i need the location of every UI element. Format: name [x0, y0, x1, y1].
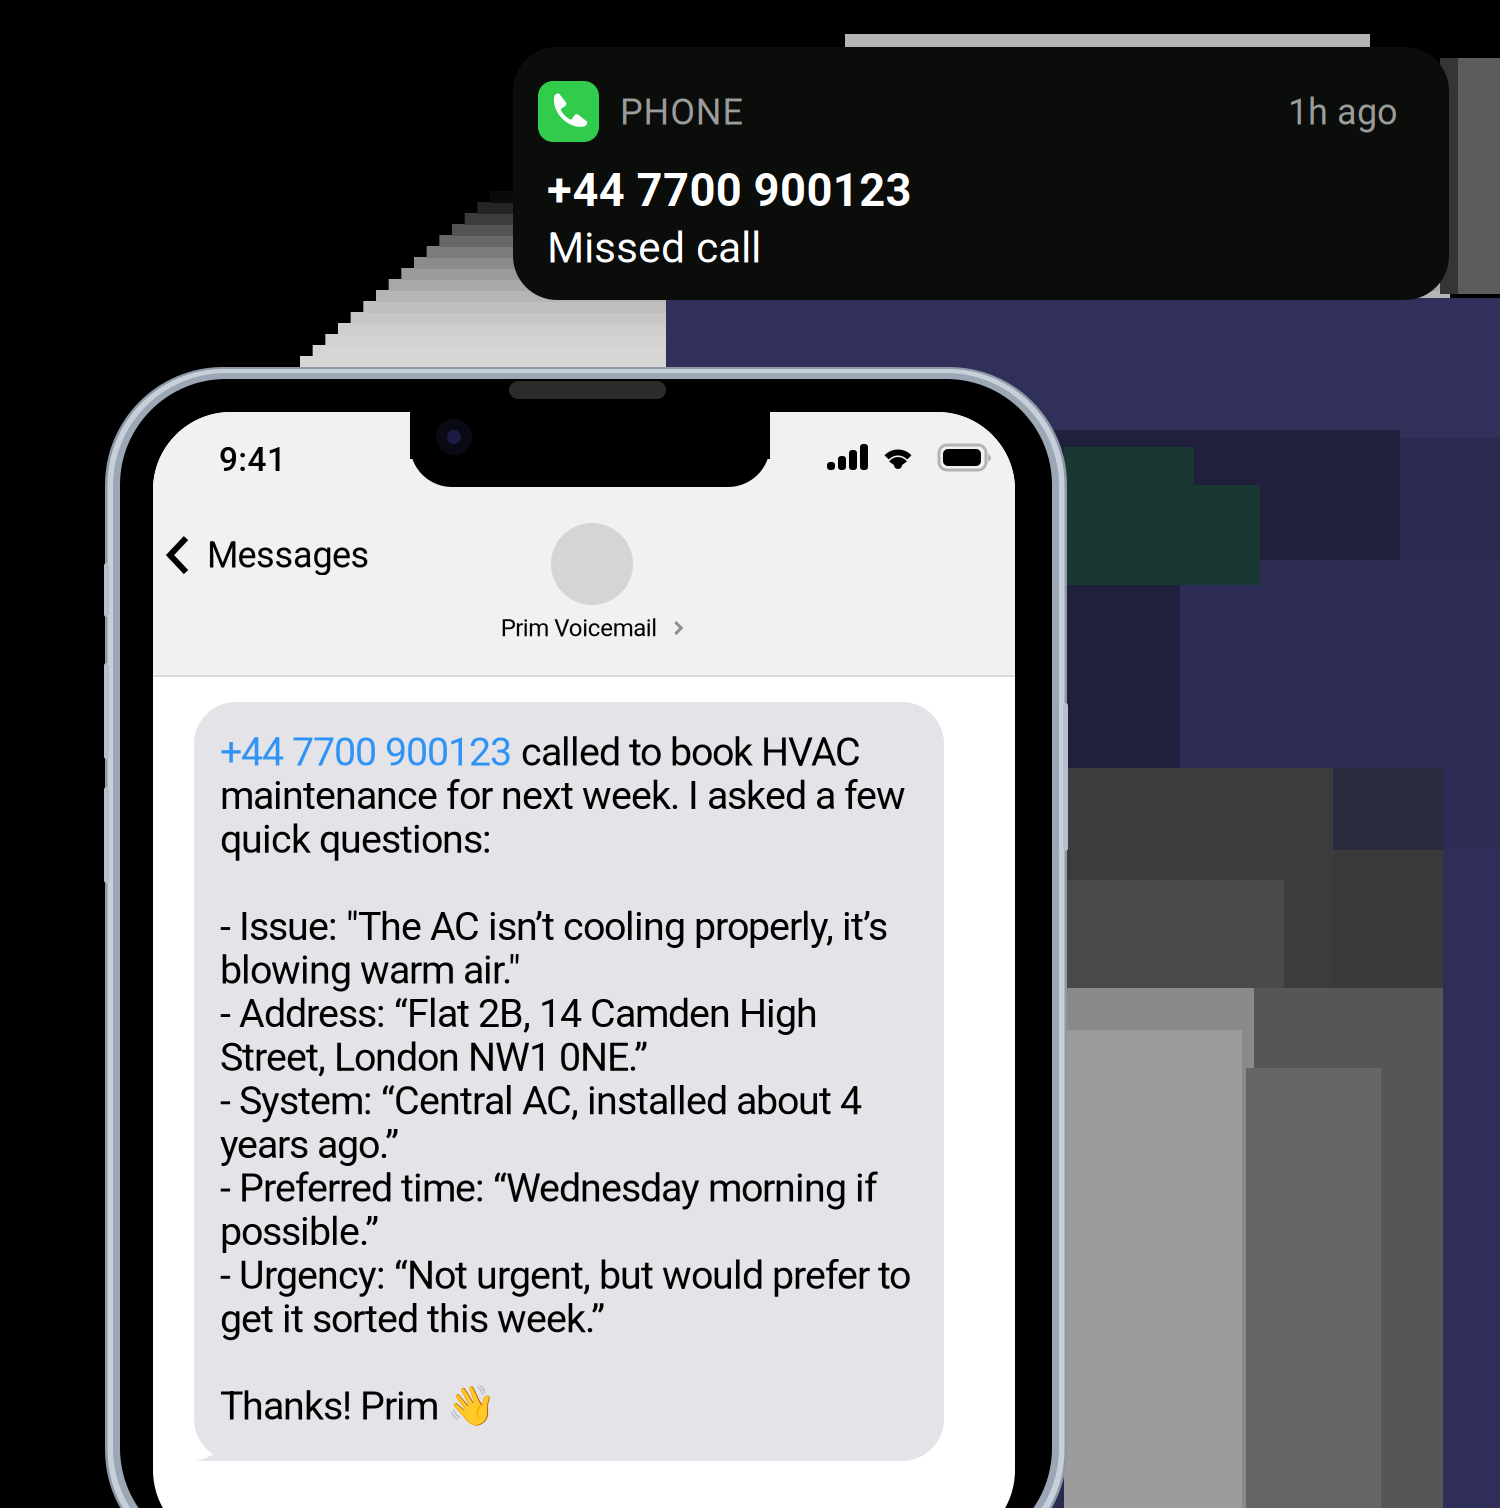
staticText: - Preferred time: “Wednesday morning if [220, 1165, 878, 1211]
staticText: possible.” [220, 1209, 379, 1255]
staticText: Thanks! Prim 👋 [220, 1383, 496, 1429]
staticText: years ago.” [220, 1121, 399, 1167]
button[interactable]: Messages [153, 522, 385, 588]
staticText: quick questions: [220, 816, 492, 862]
staticText: 1h ago [1288, 91, 1398, 133]
staticText: +44 7700 900123 [220, 729, 512, 775]
staticText: PHONE [620, 91, 742, 133]
staticText: +44 7700 900123 [547, 164, 912, 217]
staticText: - Urgency: “Not urgent, but would prefer… [220, 1252, 911, 1298]
staticText: - System: “Central AC, installed about 4 [220, 1078, 862, 1124]
staticText: called to book HVAC [512, 729, 861, 775]
button[interactable]: Prim Voicemail [489, 519, 695, 646]
staticText: - Address: “Flat 2B, 14 Camden High [220, 991, 818, 1037]
staticText: Missed call [547, 223, 761, 273]
staticText: Messages [207, 534, 369, 576]
staticText: blowing warm air." [220, 947, 521, 993]
staticText: maintenance for next week. I asked a few [220, 773, 906, 819]
staticText: Street, London NW1 0NE.” [220, 1034, 648, 1080]
staticText: - Issue: "The AC isn’t cooling properly,… [220, 903, 888, 949]
button[interactable]: PHONE [513, 47, 1449, 300]
staticText: Prim Voicemail [501, 614, 657, 642]
staticText: get it sorted this week.” [220, 1296, 605, 1342]
staticText: 9:41 [219, 440, 286, 479]
